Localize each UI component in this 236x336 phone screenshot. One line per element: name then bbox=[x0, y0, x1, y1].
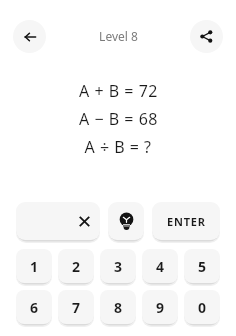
button[interactable]: Share bbox=[190, 20, 223, 53]
staticText: 2 bbox=[72, 257, 81, 276]
button[interactable]: 3 bbox=[100, 249, 136, 283]
button[interactable]: ENTER bbox=[152, 202, 220, 240]
staticText: 1 bbox=[30, 257, 39, 276]
button[interactable]: 0 bbox=[184, 290, 220, 324]
button[interactable]: 7 bbox=[58, 290, 94, 324]
button[interactable]: 8 bbox=[100, 290, 136, 324]
button[interactable]: Hint bbox=[108, 202, 144, 240]
staticText: A + B = 72 bbox=[79, 80, 158, 102]
button[interactable]: 9 bbox=[142, 290, 178, 324]
staticText: 7 bbox=[72, 298, 81, 317]
staticText: Level 8 bbox=[99, 28, 138, 44]
button[interactable]: Clear answer bbox=[16, 202, 100, 240]
button[interactable]: 4 bbox=[142, 249, 178, 283]
button[interactable]: 5 bbox=[184, 249, 220, 283]
staticText: 0 bbox=[198, 298, 207, 317]
button[interactable]: 2 bbox=[58, 249, 94, 283]
staticText: 6 bbox=[30, 298, 39, 317]
button[interactable]: Back bbox=[13, 20, 46, 53]
staticText: 8 bbox=[114, 298, 123, 317]
staticText: 3 bbox=[114, 257, 123, 276]
staticText: 4 bbox=[156, 257, 165, 276]
staticText: 9 bbox=[156, 298, 165, 317]
staticText: ENTER bbox=[167, 214, 206, 229]
button[interactable]: 1 bbox=[16, 249, 52, 283]
staticText: A − B = 68 bbox=[79, 108, 158, 130]
staticText: 5 bbox=[198, 257, 207, 276]
button[interactable]: 6 bbox=[16, 290, 52, 324]
staticText: A ÷ B = ? bbox=[84, 136, 152, 158]
